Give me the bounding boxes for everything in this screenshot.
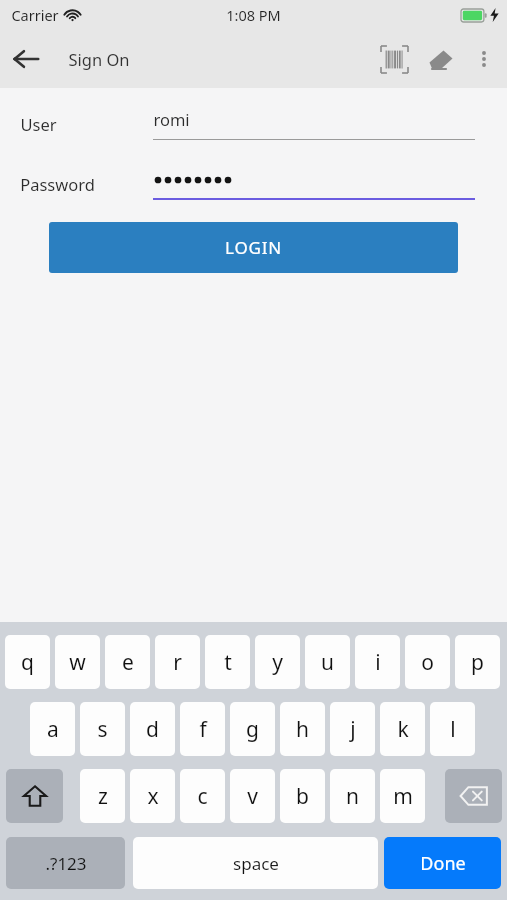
staticText: n [346, 782, 359, 811]
button[interactable]: d [130, 702, 175, 756]
button[interactable]: s [80, 702, 125, 756]
staticText: m [393, 782, 413, 811]
staticText: u [321, 648, 334, 677]
button[interactable]: z [80, 769, 125, 823]
button[interactable]: m [380, 769, 425, 823]
staticText: q [21, 648, 34, 677]
button[interactable]: More options [463, 38, 505, 80]
staticText: Password [20, 173, 95, 195]
button[interactable]: b [280, 769, 325, 823]
button[interactable]: Scan barcode [371, 36, 417, 82]
staticText: r [173, 648, 182, 677]
button[interactable]: Back [4, 37, 48, 81]
button[interactable]: space [133, 837, 378, 889]
button[interactable]: y [255, 635, 300, 689]
staticText: Done [420, 851, 466, 876]
staticText: Sign On [68, 48, 130, 70]
button[interactable]: .?123 [6, 837, 125, 889]
button[interactable]: n [330, 769, 375, 823]
staticText: y [272, 648, 283, 677]
staticText: space [233, 852, 279, 875]
staticText: k [397, 715, 409, 744]
staticText: i [375, 648, 381, 677]
staticText: 1:08 PM [226, 5, 281, 25]
staticText: s [97, 715, 108, 744]
staticText: d [146, 715, 159, 744]
staticText: h [296, 715, 309, 744]
button[interactable]: c [180, 769, 225, 823]
staticText: t [224, 648, 232, 677]
staticText: e [122, 648, 134, 677]
button[interactable]: p [455, 635, 500, 689]
button[interactable]: q [5, 635, 50, 689]
staticText: o [421, 648, 434, 677]
staticText: Carrier [11, 5, 59, 25]
button[interactable]: h [280, 702, 325, 756]
button[interactable]: Done [384, 837, 501, 889]
button[interactable]: t [205, 635, 250, 689]
button[interactable]: w [55, 635, 100, 689]
button[interactable]: a [30, 702, 75, 756]
button[interactable]: Backspace [445, 769, 502, 823]
staticText: x [147, 782, 159, 811]
button[interactable]: u [305, 635, 350, 689]
staticText: p [471, 648, 484, 677]
button[interactable]: i [355, 635, 400, 689]
staticText: j [350, 715, 356, 744]
staticText: v [247, 782, 258, 811]
button[interactable]: l [430, 702, 475, 756]
button[interactable]: v [230, 769, 275, 823]
staticText: .?123 [45, 852, 87, 875]
staticText: l [450, 715, 456, 744]
button[interactable]: j [330, 702, 375, 756]
button[interactable]: f [180, 702, 225, 756]
staticText: a [47, 715, 59, 744]
staticText: g [246, 715, 259, 744]
button[interactable]: romi [153, 102, 475, 140]
button[interactable]: Clear [417, 36, 463, 82]
staticText: User [20, 113, 57, 135]
button[interactable]: k [380, 702, 425, 756]
staticText: w [69, 648, 86, 677]
button[interactable]: Shift [6, 769, 63, 823]
staticText: z [98, 782, 108, 811]
button[interactable]: g [230, 702, 275, 756]
button[interactable]: r [155, 635, 200, 689]
button[interactable]: e [105, 635, 150, 689]
button[interactable]: x [130, 769, 175, 823]
staticText: b [296, 782, 309, 811]
button[interactable]: LOGIN [49, 222, 458, 273]
staticText: f [199, 715, 207, 744]
staticText: LOGIN [225, 236, 282, 259]
button[interactable]: o [405, 635, 450, 689]
button[interactable] [153, 162, 475, 200]
staticText: c [197, 782, 208, 811]
staticText: romi [153, 108, 190, 130]
